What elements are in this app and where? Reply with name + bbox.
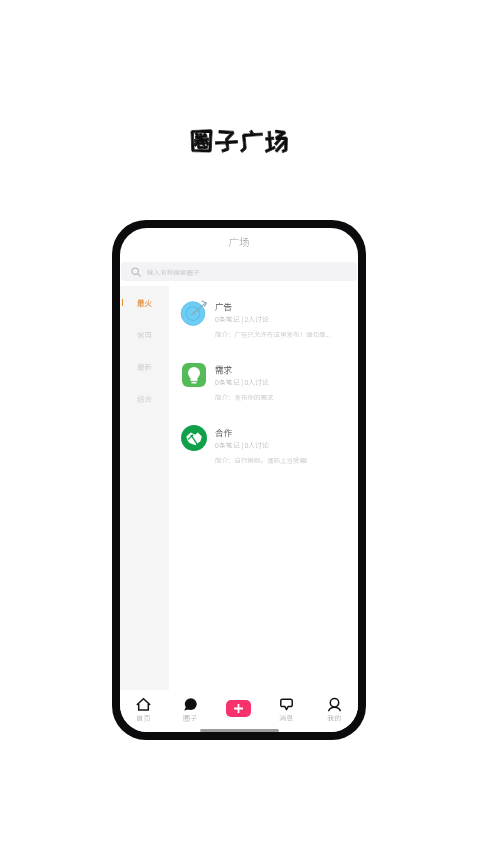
staticText: 0条笔记 | 0人讨论	[215, 377, 270, 387]
staticText: 广场	[120, 234, 358, 249]
button[interactable]: Add post	[226, 700, 251, 717]
button[interactable]: 输入名称搜索圈子	[121, 262, 357, 281]
staticText: 最火	[137, 297, 152, 308]
button[interactable]: 消息	[262, 690, 310, 732]
button[interactable]: 我的	[310, 690, 358, 732]
button[interactable]: 需求	[169, 362, 358, 425]
staticText: 简介：广告只允许在这里发布！请勿是...	[215, 329, 331, 338]
button[interactable]: 圈子	[167, 690, 214, 732]
staticText: 0条笔记 | 0人讨论	[215, 440, 270, 450]
staticText: 需求	[215, 363, 233, 375]
staticText: 最新	[137, 361, 152, 372]
staticText: 常用	[137, 329, 152, 340]
button[interactable]: 合作	[169, 425, 358, 488]
staticText: 圈子广场	[0, 127, 478, 154]
staticText: 广告	[215, 300, 233, 312]
staticText: 消息	[279, 713, 294, 723]
staticText: 输入名称搜索圈子	[147, 267, 200, 277]
button[interactable]: 常用	[120, 318, 169, 350]
staticText: 我的	[327, 713, 342, 723]
button[interactable]: 最新	[120, 350, 169, 382]
staticText: 合作	[215, 426, 233, 438]
staticText: 简介：自行辨别，谨防上当受骗!	[215, 455, 308, 464]
staticText: 圈子	[183, 713, 198, 723]
staticText: 综合	[137, 393, 152, 404]
button[interactable]: 最火	[120, 286, 169, 318]
button[interactable]: 首页	[120, 690, 167, 732]
staticText: 圈子广场	[0, 127, 478, 154]
button[interactable]: 综合	[120, 382, 169, 414]
staticText: 0条笔记 | 2人讨论	[215, 314, 270, 324]
staticText: 首页	[136, 713, 151, 723]
staticText: 简介：发布你的需求	[215, 392, 274, 401]
button[interactable]: 广告	[169, 299, 358, 362]
